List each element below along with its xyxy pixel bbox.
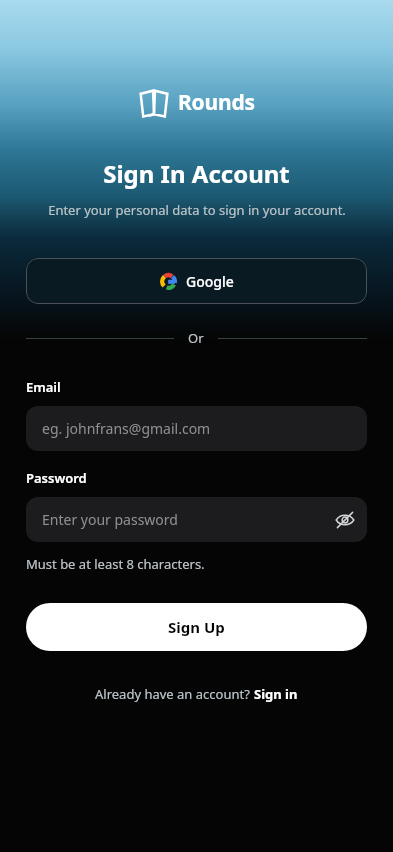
button[interactable]: Google — [26, 258, 367, 304]
staticText: Or — [188, 329, 204, 347]
button[interactable]: Enter your password — [26, 497, 367, 542]
staticText: Sign in — [254, 685, 298, 703]
staticText: Must be at least 8 characters. — [26, 555, 205, 573]
staticText: Email — [26, 378, 61, 396]
staticText: eg. johnfrans@gmail.com — [42, 419, 211, 438]
button[interactable]: eg. johnfrans@gmail.com — [26, 406, 367, 451]
staticText: Already have an account? — [95, 685, 254, 703]
button[interactable]: Show password — [323, 498, 367, 542]
staticText: Enter your password — [42, 510, 178, 529]
staticText: Password — [26, 469, 87, 487]
button[interactable]: Sign Up — [26, 603, 367, 651]
button[interactable]: Rounds — [139, 88, 255, 117]
staticText: Google — [186, 272, 234, 291]
staticText: Sign Up — [168, 617, 225, 637]
button[interactable]: Already have an account? — [83, 681, 310, 707]
staticText: Sign In Account — [103, 157, 290, 190]
staticText: Rounds — [178, 88, 255, 117]
staticText: Enter your personal data to sign in your… — [48, 201, 346, 219]
